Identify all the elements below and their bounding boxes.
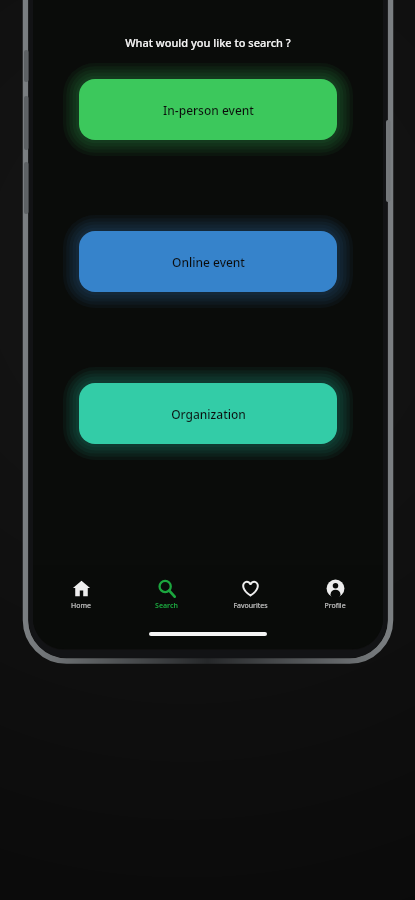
staticText: In-person event [163, 102, 254, 118]
staticText: Online event [172, 254, 245, 270]
staticText: Search [155, 601, 178, 611]
button[interactable]: In-person event [79, 79, 337, 140]
staticText: What would you like to search ? [33, 35, 383, 50]
staticText: Organization [171, 406, 246, 422]
staticText: Home [71, 601, 91, 611]
staticText: Favourites [233, 601, 268, 611]
button[interactable]: Organization [79, 383, 337, 444]
button[interactable]: Online event [79, 231, 337, 292]
button[interactable]: Favourites [213, 579, 287, 611]
button[interactable]: Home [44, 579, 118, 611]
button[interactable]: Search [129, 579, 203, 611]
button[interactable]: Profile [298, 579, 372, 611]
staticText: Profile [324, 601, 346, 611]
